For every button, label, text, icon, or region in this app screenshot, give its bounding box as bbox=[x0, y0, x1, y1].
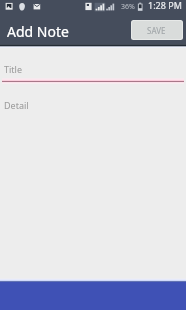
staticText: Title bbox=[4, 63, 22, 75]
staticText: Detail bbox=[4, 99, 29, 111]
staticText: SAVE bbox=[147, 25, 166, 36]
other: Status bar bbox=[0, 0, 186, 14]
staticText: 1:28 PM bbox=[148, 0, 182, 11]
button[interactable]: Detail bbox=[2, 93, 184, 117]
button[interactable]: SAVE bbox=[132, 21, 182, 39]
staticText: Add Note bbox=[7, 22, 69, 41]
staticText: 36% bbox=[121, 2, 135, 12]
button[interactable]: Title bbox=[2, 57, 184, 84]
